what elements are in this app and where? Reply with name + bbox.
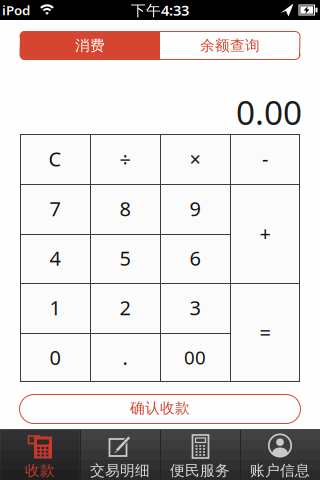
staticText: 0.00: [236, 90, 302, 134]
staticText: .: [122, 344, 127, 370]
button[interactable]: 4: [20, 233, 90, 283]
staticText: 账户信息: [250, 461, 310, 479]
staticText: 收款: [25, 461, 55, 479]
staticText: 5: [119, 245, 130, 271]
button[interactable]: C: [20, 134, 90, 184]
staticText: 9: [189, 195, 200, 222]
button[interactable]: ÷: [90, 134, 160, 184]
button[interactable]: -: [230, 134, 300, 184]
staticText: 3: [189, 294, 200, 321]
staticText: 下午4:33: [131, 0, 189, 20]
button[interactable]: 8: [90, 184, 160, 233]
button[interactable]: 确认收款: [19, 394, 301, 424]
staticText: C: [48, 145, 61, 172]
button[interactable]: 0: [20, 332, 90, 382]
button[interactable]: 账户信息: [240, 430, 320, 480]
staticText: 1: [49, 294, 60, 321]
button[interactable]: =: [230, 283, 300, 382]
button[interactable]: 5: [90, 233, 160, 283]
button[interactable]: 3: [160, 283, 230, 332]
button[interactable]: .: [90, 332, 160, 382]
button[interactable]: +: [230, 184, 300, 283]
button[interactable]: 7: [20, 184, 90, 233]
staticText: 消费: [75, 36, 105, 54]
staticText: 6: [189, 245, 200, 271]
button[interactable]: 9: [160, 184, 230, 233]
button[interactable]: 1: [20, 283, 90, 332]
button[interactable]: ×: [160, 134, 230, 184]
button[interactable]: 交易明细: [80, 430, 160, 480]
staticText: 余额查询: [200, 36, 260, 54]
staticText: ×: [189, 145, 200, 172]
staticText: =: [259, 319, 270, 346]
staticText: 00: [184, 345, 206, 370]
button[interactable]: 收款: [0, 430, 80, 480]
button[interactable]: 消费: [20, 31, 160, 60]
staticText: 4: [49, 245, 60, 271]
staticText: ÷: [119, 145, 130, 172]
staticText: 0: [49, 344, 60, 370]
staticText: 7: [49, 195, 60, 222]
button[interactable]: 00: [160, 332, 230, 382]
button[interactable]: 2: [90, 283, 160, 332]
staticText: -: [262, 145, 268, 172]
staticText: 8: [119, 195, 130, 222]
button[interactable]: 余额查询: [160, 31, 300, 60]
staticText: iPod: [2, 1, 30, 19]
button[interactable]: 便民服务: [160, 430, 240, 480]
staticText: 交易明细: [90, 461, 150, 479]
staticText: +: [259, 220, 270, 246]
staticText: 2: [119, 294, 130, 321]
staticText: 便民服务: [170, 461, 230, 479]
button[interactable]: 6: [160, 233, 230, 283]
staticText: 确认收款: [130, 399, 190, 417]
